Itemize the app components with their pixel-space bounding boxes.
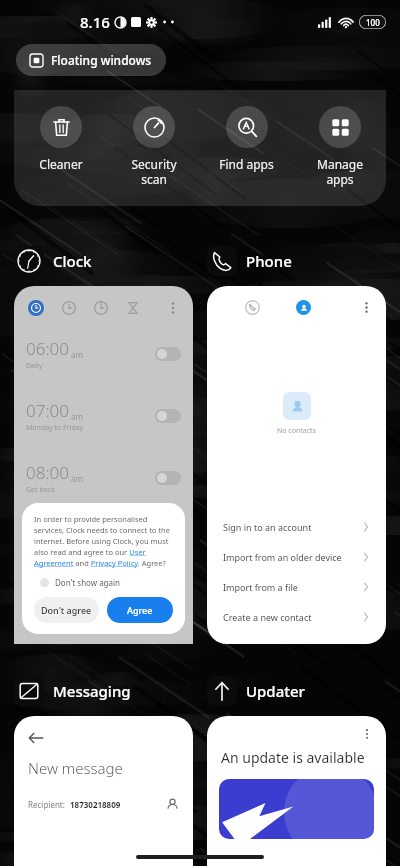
staticText: Updater [246, 681, 305, 701]
button[interactable]: Pick contact [166, 798, 179, 811]
staticText: Import from an older device [223, 551, 362, 563]
staticText: Don't show again [55, 577, 121, 588]
button[interactable]: Timer tab [126, 301, 140, 315]
button[interactable]: Import from a file [207, 572, 386, 602]
button[interactable]: Alarm toggle [155, 347, 181, 361]
staticText: Clock [53, 251, 92, 271]
staticText: Security scan [131, 156, 177, 188]
staticText: Daily [26, 361, 43, 371]
button[interactable]: More options [362, 728, 372, 740]
button[interactable]: Manage apps [293, 102, 386, 192]
staticText: 08:00 [26, 461, 69, 484]
button[interactable]: Alarm toggle [155, 409, 181, 423]
button[interactable]: Floating windows [16, 44, 166, 76]
button[interactable]: Don't agree [34, 597, 99, 623]
staticText: 07:00 [26, 399, 69, 422]
button[interactable]: Create a new contact [207, 602, 386, 632]
button[interactable]: Security scan [107, 102, 200, 192]
button[interactable]: Import from an older device [207, 542, 386, 572]
staticText: 06:00 [26, 337, 69, 360]
staticText: Cleaner [39, 156, 83, 172]
staticText: Phone [246, 251, 292, 271]
staticText: Manage apps [317, 156, 363, 188]
staticText: Monday to Friday [26, 423, 84, 433]
button[interactable]: Find apps [200, 102, 293, 176]
staticText: Find apps [219, 156, 274, 172]
staticText: Create a new contact [223, 611, 362, 623]
staticText: An update is available [221, 748, 365, 767]
button[interactable]: Alarm tab [28, 300, 44, 316]
staticText: am [71, 473, 83, 484]
button[interactable]: Back [28, 730, 44, 746]
button[interactable]: More options [167, 301, 179, 315]
staticText: 18730218809 [70, 799, 121, 810]
button[interactable]: Agree [107, 597, 173, 623]
staticText: Messaging [53, 681, 131, 701]
staticText: In order to provide personalised service… [34, 514, 173, 568]
button[interactable]: Contacts tab [296, 300, 311, 315]
staticText: Floating windows [51, 52, 152, 68]
button[interactable]: Sign in to an account [207, 512, 386, 542]
button[interactable]: Clock [14, 244, 92, 278]
button[interactable]: Clock tab [62, 301, 76, 315]
staticText: am [71, 349, 83, 360]
staticText: Import from a file [223, 581, 362, 593]
button[interactable]: Don't show again [34, 576, 121, 589]
button[interactable]: Dialer tab [245, 300, 260, 315]
staticText: Agree [127, 604, 153, 616]
staticText: Don't agree [41, 604, 92, 616]
staticText: 8.16 [80, 12, 110, 32]
staticText: am [71, 411, 83, 422]
button[interactable]: Alarm toggle [155, 471, 181, 485]
button[interactable]: Messaging [14, 674, 131, 708]
button[interactable]: Stopwatch tab [94, 301, 108, 315]
button[interactable]: Phone [207, 244, 292, 278]
button[interactable]: Cleaner [14, 102, 107, 176]
staticText: New message [28, 758, 123, 778]
button[interactable]: More options [361, 301, 372, 314]
button[interactable]: Updater [207, 674, 305, 708]
staticText: Get back [26, 485, 55, 495]
staticText: Sign in to an account [223, 521, 362, 533]
staticText: 100 [366, 17, 380, 28]
staticText: No contacts [277, 426, 316, 436]
staticText: Recipient: [28, 799, 65, 810]
